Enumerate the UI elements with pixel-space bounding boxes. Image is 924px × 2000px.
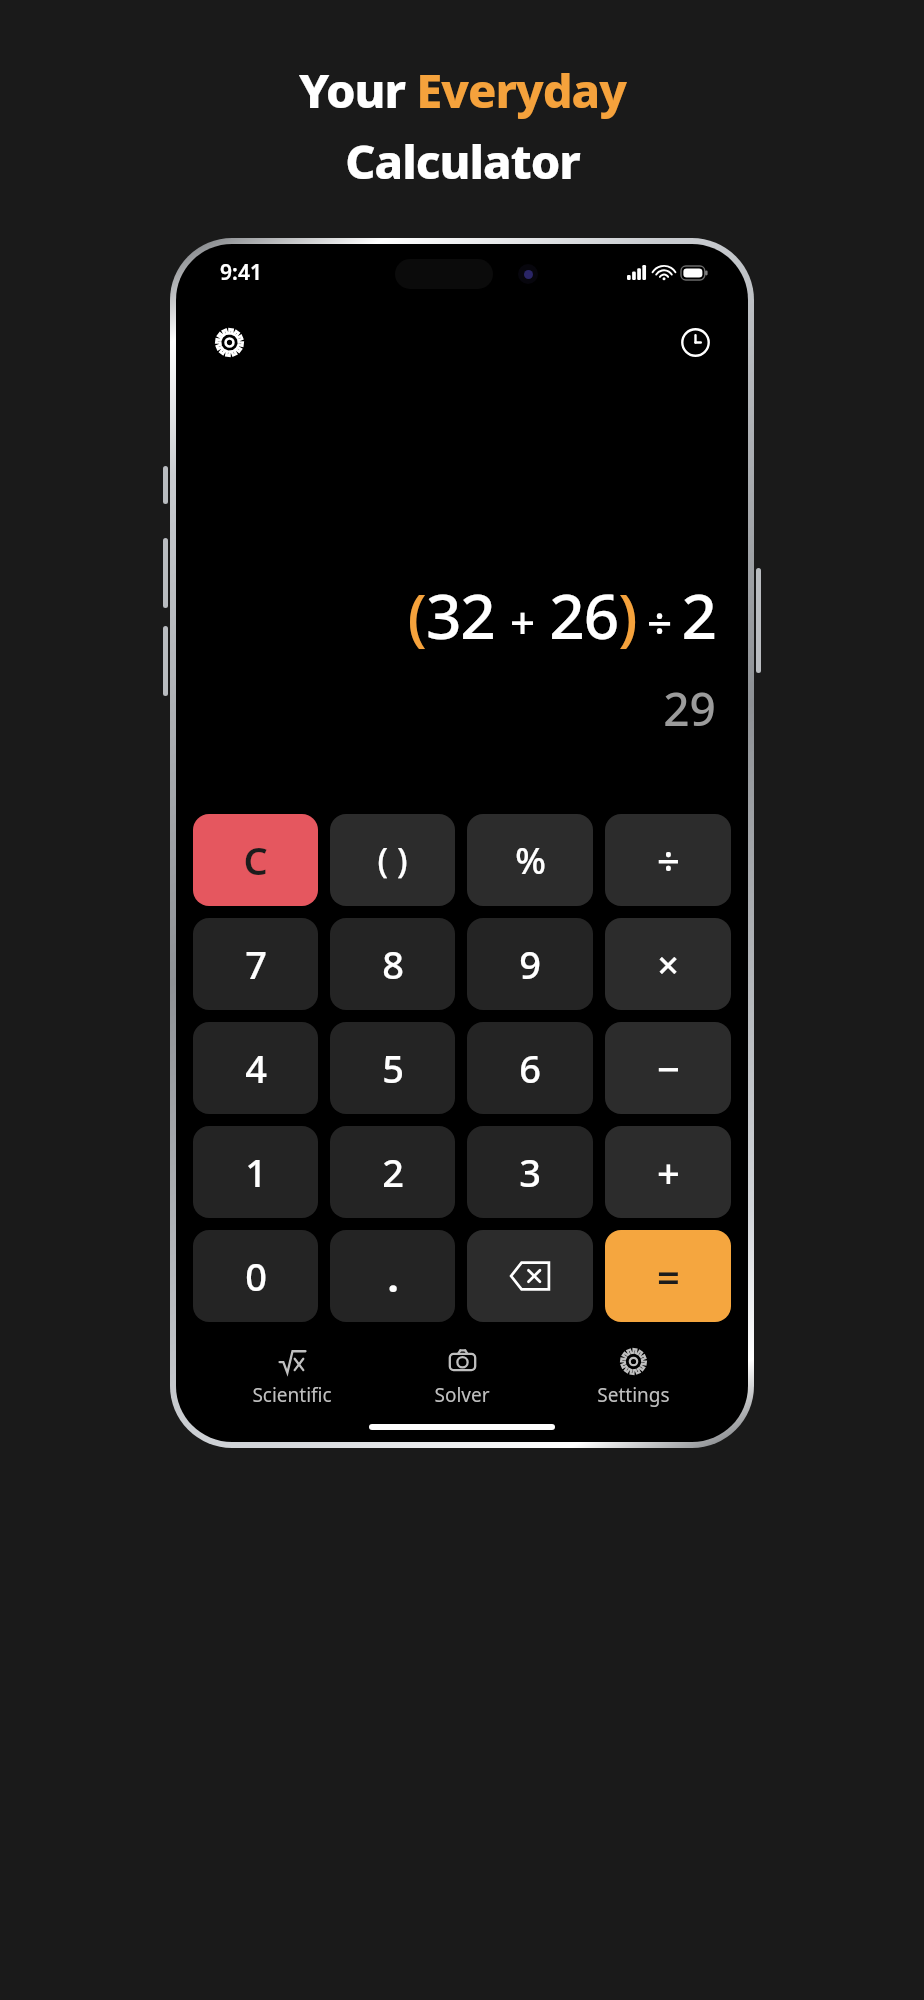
staticText: ( ) [377, 837, 408, 883]
button[interactable]: 3 [467, 1126, 593, 1218]
button[interactable]: 2 [330, 1126, 455, 1218]
staticText: C [243, 834, 268, 886]
staticText: 4 [245, 1042, 267, 1094]
button[interactable]: 5 [330, 1022, 455, 1114]
button[interactable]: 7 [193, 918, 318, 1010]
staticText: × [657, 938, 679, 990]
button[interactable]: % [467, 814, 593, 906]
button[interactable]: Scientific [217, 1344, 367, 1412]
button[interactable]: − [605, 1022, 731, 1114]
staticText: 5 [382, 1042, 404, 1094]
staticText: Your Everyday [299, 58, 626, 122]
staticText: 9 [519, 938, 541, 990]
button[interactable]: History [672, 319, 718, 365]
staticText: 8 [382, 938, 404, 990]
button[interactable]: ( ) [330, 814, 455, 906]
button[interactable]: 4 [193, 1022, 318, 1114]
button[interactable]: Backspace [467, 1230, 593, 1322]
button[interactable]: Settings [206, 319, 252, 365]
button[interactable]: 9 [467, 918, 593, 1010]
staticText: Solver [434, 1382, 490, 1408]
staticText: + [657, 1145, 680, 1199]
staticText: 1 [245, 1146, 267, 1198]
button[interactable]: + [605, 1126, 731, 1218]
staticText: 6 [519, 1042, 541, 1094]
staticText: (32 + 26) ÷ 2 [407, 573, 716, 657]
staticText: 3 [519, 1146, 541, 1198]
button[interactable]: × [605, 918, 731, 1010]
staticText: 2 [382, 1146, 404, 1198]
button[interactable]: 6 [467, 1022, 593, 1114]
staticText: 7 [245, 938, 267, 990]
staticText: ÷ [657, 833, 680, 887]
button[interactable]: 1 [193, 1126, 318, 1218]
staticText: 29 [663, 677, 716, 740]
staticText: − [657, 1041, 680, 1095]
button[interactable]: ÷ [605, 814, 731, 906]
staticText: Scientific [252, 1382, 332, 1408]
staticText: Settings [597, 1382, 670, 1408]
staticText: Calculator [345, 129, 580, 193]
staticText: 0 [245, 1250, 267, 1302]
staticText: 9:41 [220, 258, 262, 287]
button[interactable]: 0 [193, 1230, 318, 1322]
button[interactable]: = [605, 1230, 731, 1322]
staticText: % [515, 836, 546, 885]
button[interactable]: . [330, 1230, 455, 1322]
button[interactable]: 8 [330, 918, 455, 1010]
button[interactable]: Settings [558, 1344, 708, 1412]
staticText: = [657, 1249, 680, 1303]
button[interactable]: Solver [387, 1344, 537, 1412]
staticText: . [387, 1249, 399, 1303]
button[interactable]: C [193, 814, 318, 906]
